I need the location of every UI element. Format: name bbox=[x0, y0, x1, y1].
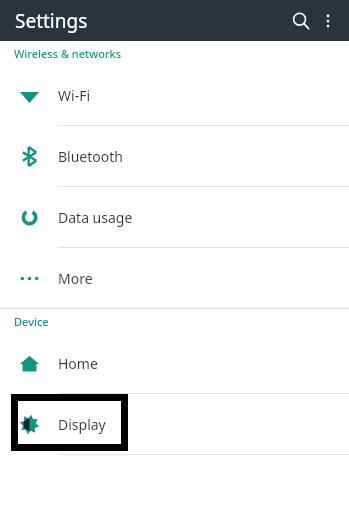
staticText: Settings bbox=[15, 8, 88, 34]
staticText: More bbox=[58, 269, 93, 288]
staticText: Display bbox=[58, 415, 106, 434]
button[interactable]: Display bbox=[0, 394, 349, 454]
staticText: Data usage bbox=[58, 208, 133, 227]
staticText: Bluetooth bbox=[58, 147, 123, 166]
button[interactable]: More bbox=[0, 248, 349, 308]
button[interactable]: Home bbox=[0, 333, 349, 393]
button[interactable]: Bluetooth bbox=[0, 126, 349, 186]
staticText: Wi-Fi bbox=[58, 86, 91, 105]
staticText: Device bbox=[14, 314, 49, 329]
button[interactable]: Data usage bbox=[0, 187, 349, 247]
button[interactable]: More options bbox=[311, 4, 345, 38]
button[interactable]: Search bbox=[284, 4, 318, 38]
staticText: Home bbox=[58, 354, 98, 373]
staticText: Wireless & networks bbox=[14, 46, 122, 61]
button[interactable]: Wi-Fi bbox=[0, 65, 349, 125]
